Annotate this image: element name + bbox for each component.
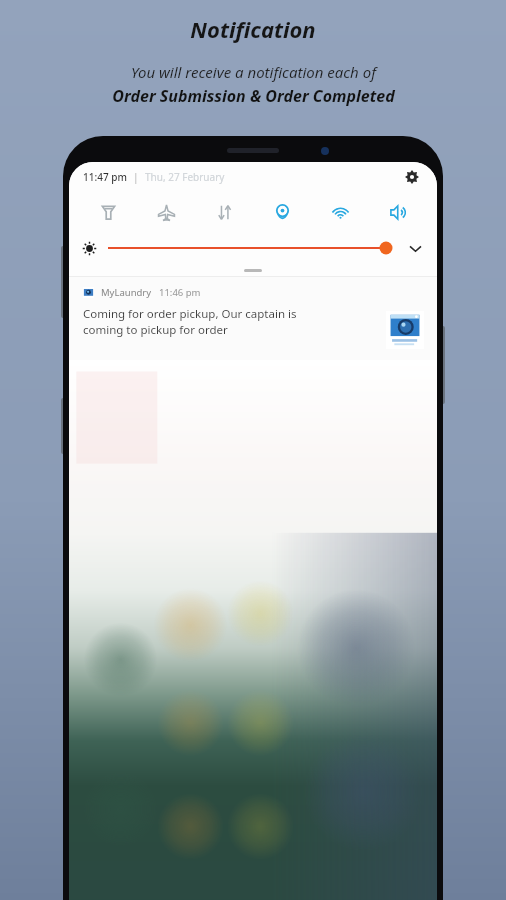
button[interactable]: Airplane mode bbox=[137, 192, 195, 232]
staticText: Order Submission & Order Completed bbox=[112, 85, 395, 107]
staticText: | bbox=[133, 170, 139, 184]
button[interactable]: Brightness bbox=[108, 239, 395, 257]
button[interactable]: MyLaundry bbox=[69, 277, 437, 360]
button[interactable]: Settings bbox=[401, 166, 423, 188]
staticText: 11:47 pm bbox=[83, 170, 127, 184]
staticText: Thu, 27 February bbox=[145, 170, 225, 184]
staticText: 11:46 pm bbox=[159, 286, 201, 299]
button[interactable]: Sound bbox=[369, 192, 427, 232]
staticText: MyLaundry bbox=[101, 286, 152, 299]
button[interactable]: Wi-Fi bbox=[311, 192, 369, 232]
button[interactable]: Mobile data bbox=[195, 192, 253, 232]
staticText: Notification bbox=[190, 14, 316, 44]
button[interactable]: Expand bbox=[405, 238, 425, 258]
staticText: You will receive a notification each of bbox=[131, 62, 376, 82]
button[interactable]: Flashlight bbox=[79, 192, 137, 232]
button[interactable]: Location bbox=[253, 192, 311, 232]
staticText: Coming for order pickup, Our captain is … bbox=[83, 306, 377, 337]
